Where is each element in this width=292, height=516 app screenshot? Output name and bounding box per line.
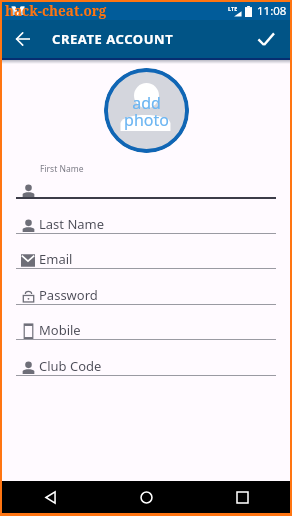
button[interactable]: Club Code bbox=[2, 340, 290, 376]
staticText: Password bbox=[39, 286, 98, 304]
staticText: Club Code bbox=[39, 357, 102, 375]
button[interactable]: Add photo bbox=[104, 68, 189, 153]
staticText: hack-cheat.org bbox=[5, 2, 107, 20]
button[interactable]: Done bbox=[252, 25, 280, 53]
staticText: Email bbox=[39, 250, 73, 268]
button[interactable]: First Name bbox=[2, 163, 290, 199]
button[interactable]: Back bbox=[8, 24, 38, 54]
staticText: CREATE ACCOUNT bbox=[52, 30, 174, 48]
staticText: LTE bbox=[228, 5, 238, 12]
staticText: Mobile bbox=[39, 321, 81, 339]
button[interactable]: Back bbox=[2, 481, 98, 513]
staticText: add bbox=[132, 92, 161, 114]
button[interactable]: Recent apps bbox=[194, 481, 290, 513]
staticText: First Name bbox=[40, 163, 84, 175]
button[interactable]: Password bbox=[2, 269, 290, 305]
button[interactable]: Mobile bbox=[2, 305, 290, 340]
button[interactable]: Last Name bbox=[2, 199, 290, 234]
button[interactable]: Email bbox=[2, 234, 290, 269]
staticText: 11:08 bbox=[257, 3, 287, 19]
staticText: photo bbox=[124, 109, 169, 131]
button[interactable]: Home bbox=[98, 481, 194, 513]
staticText: Last Name bbox=[39, 215, 105, 233]
